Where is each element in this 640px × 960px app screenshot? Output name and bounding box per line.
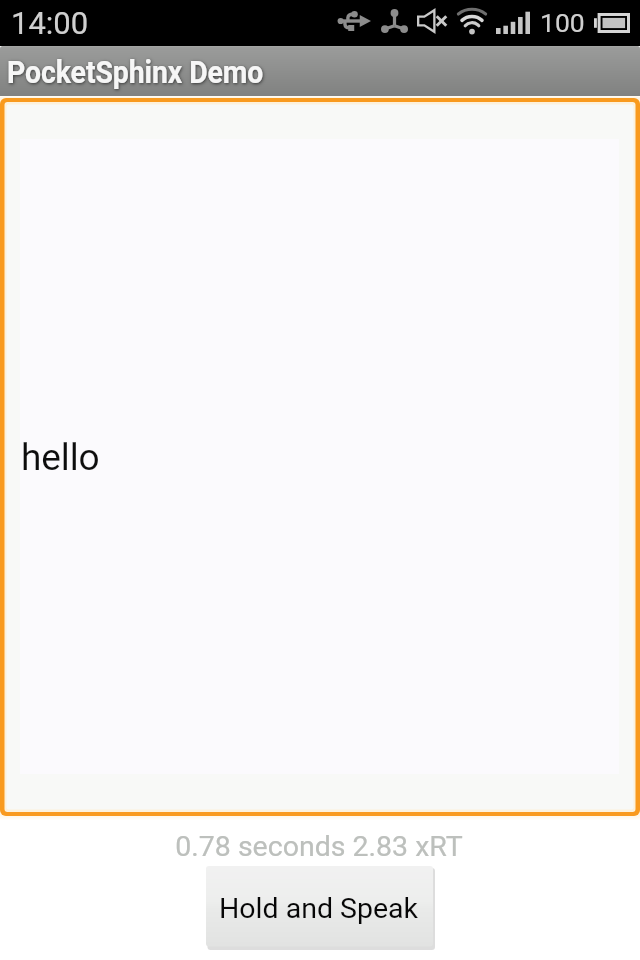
staticText: hello <box>21 436 100 479</box>
staticText: PocketSphinx Demo <box>7 54 264 90</box>
other: USB connected <box>338 11 371 31</box>
staticText: 14:00 <box>11 5 89 41</box>
button[interactable]: hello <box>0 96 640 820</box>
staticText: 100 <box>540 7 585 38</box>
other: Ringer muted <box>417 9 448 33</box>
staticText: 0.78 seconds 2.83 xRT <box>0 830 639 863</box>
staticText: Hold and Speak <box>219 892 419 925</box>
other: Wi-Fi signal <box>457 9 487 32</box>
other: USB debugging <box>381 9 408 33</box>
other: Battery full <box>594 13 630 33</box>
button[interactable]: Hold and Speak <box>206 866 435 949</box>
other: Mobile signal <box>496 11 530 34</box>
